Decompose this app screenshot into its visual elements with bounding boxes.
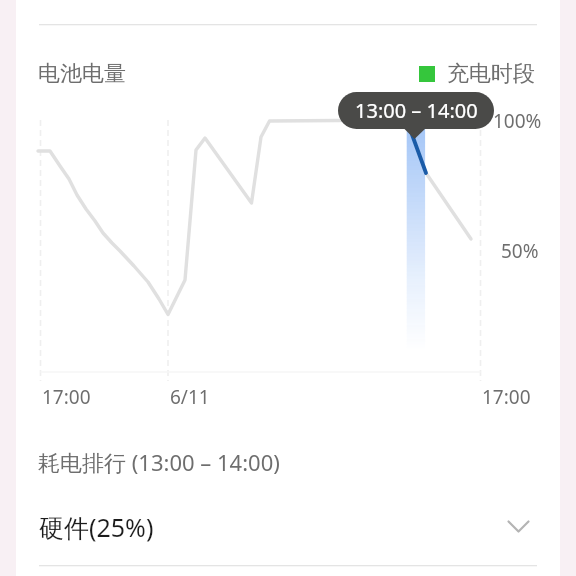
- staticText: 50%: [501, 238, 539, 264]
- other: Expand: [508, 516, 529, 537]
- button[interactable]: 13:00 – 14:00: [338, 92, 494, 129]
- button[interactable]: 硬件(25%): [16, 500, 560, 553]
- staticText: 6/11: [170, 384, 210, 410]
- staticText: 电池电量: [38, 60, 126, 88]
- staticText: 硬件(25%): [39, 510, 154, 544]
- staticText: 17:00: [482, 384, 531, 410]
- staticText: 100%: [493, 108, 542, 134]
- staticText: 充电时段: [447, 60, 535, 88]
- staticText: 耗电排行 (13:00 – 14:00): [38, 447, 280, 477]
- staticText: 13:00 – 14:00: [355, 97, 478, 124]
- staticText: 17:00: [42, 384, 91, 410]
